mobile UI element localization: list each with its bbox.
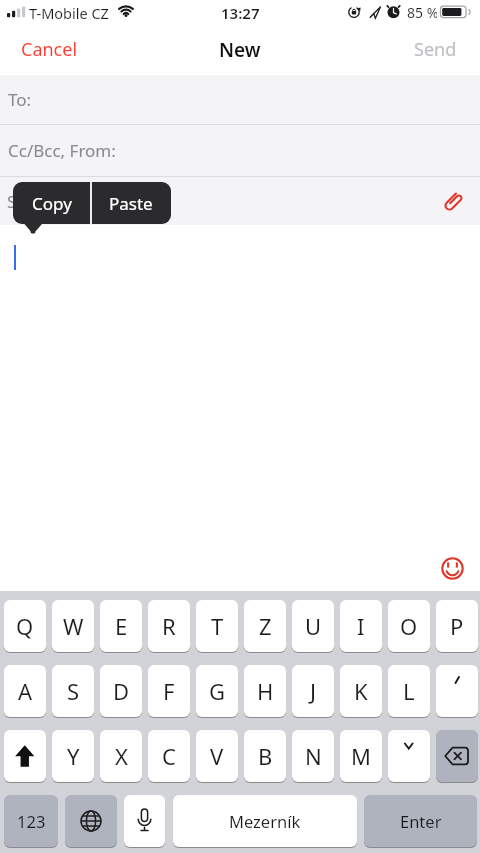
button[interactable]: S bbox=[52, 665, 94, 717]
staticText: W bbox=[63, 611, 84, 641]
button[interactable] bbox=[441, 557, 464, 580]
staticText: O bbox=[400, 611, 418, 641]
button[interactable]: B bbox=[244, 730, 286, 782]
button[interactable]: A bbox=[4, 665, 46, 717]
staticText: R bbox=[162, 611, 176, 641]
staticText: B bbox=[258, 741, 273, 771]
staticText: V bbox=[210, 741, 224, 771]
button[interactable]: F bbox=[148, 665, 190, 717]
staticText: S bbox=[67, 676, 80, 706]
staticText: M bbox=[351, 741, 371, 771]
staticText: N bbox=[305, 741, 322, 771]
button[interactable]: X bbox=[100, 730, 142, 782]
staticText: 85 % bbox=[407, 3, 437, 22]
button[interactable] bbox=[388, 730, 430, 782]
button[interactable]: J bbox=[292, 665, 334, 717]
button[interactable]: T bbox=[196, 600, 238, 652]
button[interactable] bbox=[440, 189, 466, 217]
staticText: Y bbox=[67, 741, 80, 771]
button[interactable]: K bbox=[340, 665, 382, 717]
button[interactable]: I bbox=[340, 600, 382, 652]
button[interactable] bbox=[124, 795, 165, 847]
button[interactable] bbox=[436, 665, 478, 717]
staticText: D bbox=[113, 676, 130, 706]
button[interactable]: Paste bbox=[91, 182, 171, 224]
staticText: Q bbox=[16, 611, 34, 641]
staticText: L bbox=[403, 676, 415, 706]
staticText: T-Mobile CZ bbox=[29, 3, 109, 23]
staticText: Mezerník bbox=[229, 810, 301, 832]
staticText: I bbox=[357, 611, 365, 641]
staticText: C bbox=[162, 741, 176, 771]
staticText: J bbox=[310, 676, 317, 706]
staticText: Paste bbox=[109, 192, 153, 215]
button[interactable]: 123 bbox=[4, 795, 58, 847]
staticText: Enter bbox=[400, 810, 442, 832]
staticText: 13:27 bbox=[221, 3, 260, 23]
button[interactable]: To: bbox=[0, 75, 480, 124]
staticText: X bbox=[115, 741, 128, 771]
button[interactable]: H bbox=[244, 665, 286, 717]
button[interactable]: E bbox=[100, 600, 142, 652]
staticText: Z bbox=[259, 611, 272, 641]
staticText: Copy bbox=[32, 192, 72, 215]
staticText: E bbox=[115, 611, 128, 641]
button[interactable]: U bbox=[292, 600, 334, 652]
button[interactable]: Send bbox=[414, 37, 457, 62]
staticText: F bbox=[163, 676, 175, 706]
button[interactable]: Copy bbox=[13, 182, 90, 224]
staticText: Subject bbox=[7, 190, 66, 213]
staticText: A bbox=[18, 676, 33, 706]
staticText: Send bbox=[414, 37, 457, 62]
button[interactable]: L bbox=[388, 665, 430, 717]
button[interactable] bbox=[436, 730, 478, 782]
button[interactable]: G bbox=[196, 665, 238, 717]
staticText: To: bbox=[8, 88, 32, 111]
button[interactable]: W bbox=[52, 600, 94, 652]
staticText: K bbox=[354, 676, 368, 706]
button[interactable]: Mezerník bbox=[173, 795, 357, 847]
button[interactable]: O bbox=[388, 600, 430, 652]
button[interactable]: N bbox=[292, 730, 334, 782]
button[interactable]: C bbox=[148, 730, 190, 782]
button[interactable]: Enter bbox=[364, 795, 477, 847]
button[interactable]: P bbox=[436, 600, 478, 652]
button[interactable]: Y bbox=[52, 730, 94, 782]
button[interactable]: Z bbox=[244, 600, 286, 652]
staticText: 123 bbox=[17, 810, 46, 832]
button[interactable]: V bbox=[196, 730, 238, 782]
button[interactable]: Cancel bbox=[21, 37, 78, 62]
staticText: New bbox=[219, 37, 261, 63]
button[interactable]: M bbox=[340, 730, 382, 782]
staticText: P bbox=[450, 611, 464, 641]
staticText: Cc/Bcc, From: bbox=[8, 139, 116, 162]
button[interactable]: Q bbox=[4, 600, 46, 652]
staticText: T bbox=[211, 611, 224, 641]
button[interactable]: R bbox=[148, 600, 190, 652]
button[interactable]: Cc/Bcc, From: bbox=[0, 125, 480, 176]
button[interactable] bbox=[4, 730, 46, 782]
button[interactable] bbox=[65, 795, 117, 847]
staticText: G bbox=[209, 676, 226, 706]
button[interactable]: Subject bbox=[0, 177, 480, 225]
staticText: Cancel bbox=[21, 37, 78, 62]
staticText: H bbox=[257, 676, 274, 706]
staticText: U bbox=[305, 611, 322, 641]
button[interactable]: D bbox=[100, 665, 142, 717]
